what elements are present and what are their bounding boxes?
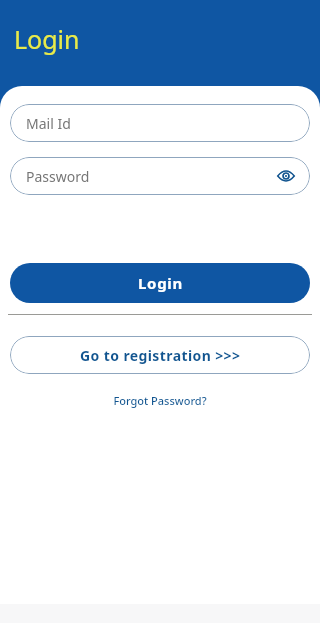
button[interactable]: Login — [10, 263, 310, 303]
staticText: Login — [138, 273, 183, 293]
staticText: Mail Id — [26, 114, 71, 133]
button[interactable]: Login — [14, 22, 80, 56]
staticText: Login — [14, 22, 80, 56]
staticText: Password — [26, 167, 276, 186]
staticText: Go to registration >>> — [80, 346, 241, 365]
staticText: Forgot Password? — [113, 393, 207, 408]
button[interactable]: Forgot Password? — [0, 390, 320, 410]
button[interactable]: Password — [10, 157, 310, 195]
button[interactable]: Show password — [276, 166, 296, 186]
button[interactable]: Mail Id — [10, 104, 310, 142]
button[interactable]: Go to registration >>> — [10, 336, 310, 374]
